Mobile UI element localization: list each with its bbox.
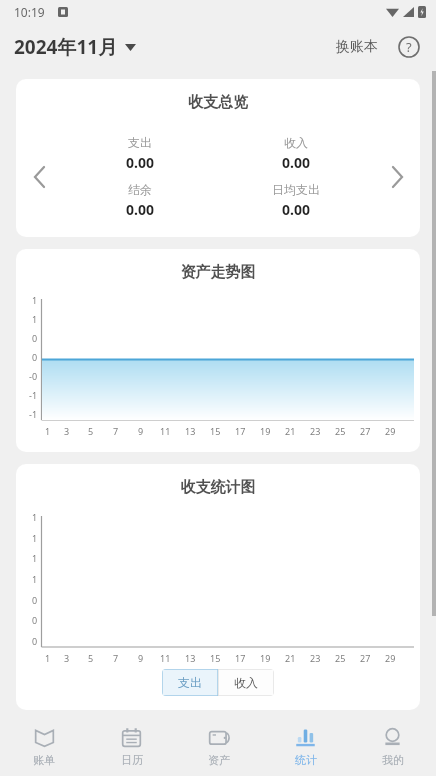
staticText: 统计 <box>295 753 317 767</box>
button[interactable]: 我的 <box>349 718 436 776</box>
staticText: 7 <box>113 425 119 437</box>
staticText: 我的 <box>382 753 404 767</box>
staticText: 2024年11月 <box>14 34 118 60</box>
staticText: 资产走势图 <box>16 263 420 282</box>
staticText: 17 <box>235 652 246 664</box>
staticText: 1 <box>32 511 38 523</box>
staticText: 收入 <box>234 675 258 690</box>
staticText: -0 <box>29 370 38 382</box>
staticText: 收支统计图 <box>16 478 420 497</box>
staticText: 25 <box>335 425 346 437</box>
staticText: 9 <box>138 425 144 437</box>
staticText: 10:19 <box>14 4 45 20</box>
staticText: 15 <box>210 425 221 437</box>
button[interactable]: 收入 <box>218 669 274 696</box>
button[interactable]: 账单 <box>0 718 88 776</box>
staticText: 29 <box>385 425 396 437</box>
staticText: 日历 <box>121 753 143 767</box>
staticText: 27 <box>360 652 371 664</box>
staticText: 0 <box>32 351 38 363</box>
staticText: -1 <box>29 389 38 401</box>
button[interactable]: 日历 <box>88 718 175 776</box>
staticText: 结余 <box>128 182 152 197</box>
staticText: 1 <box>32 552 38 564</box>
staticText: 11 <box>160 652 171 664</box>
button[interactable]: 2024年11月 <box>14 34 136 60</box>
button[interactable]: 支出 <box>162 669 218 696</box>
staticText: 0 <box>32 635 38 647</box>
staticText: 1 <box>45 425 51 437</box>
staticText: 5 <box>88 425 94 437</box>
staticText: 0 <box>32 332 38 344</box>
staticText: 11 <box>160 425 171 437</box>
staticText: 19 <box>260 652 271 664</box>
button[interactable]: 统计 <box>262 718 349 776</box>
staticText: 日均支出 <box>272 182 320 197</box>
staticText: 19 <box>260 425 271 437</box>
staticText: 15 <box>210 652 221 664</box>
staticText: 3 <box>64 652 70 664</box>
staticText: 0.00 <box>282 153 310 172</box>
staticText: 23 <box>310 425 321 437</box>
staticText: 0.00 <box>126 200 154 219</box>
button[interactable]: Next <box>374 126 420 227</box>
staticText: 27 <box>360 425 371 437</box>
button[interactable]: 资产 <box>175 718 262 776</box>
staticText: 7 <box>113 652 119 664</box>
staticText: 换账本 <box>336 38 378 56</box>
staticText: 1 <box>32 573 38 585</box>
staticText: 13 <box>185 652 196 664</box>
staticText: 支出 <box>178 675 202 690</box>
staticText: 1 <box>45 652 51 664</box>
staticText: 收支总览 <box>16 93 420 112</box>
button[interactable]: 换账本 <box>332 32 382 62</box>
staticText: 17 <box>235 425 246 437</box>
staticText: 21 <box>285 652 296 664</box>
button[interactable]: Help <box>396 34 422 60</box>
staticText: 9 <box>138 652 144 664</box>
button[interactable]: Previous <box>16 126 62 227</box>
staticText: 0 <box>32 614 38 626</box>
staticText: 0 <box>32 594 38 606</box>
staticText: 21 <box>285 425 296 437</box>
staticText: 账单 <box>33 753 55 767</box>
staticText: 1 <box>32 313 38 325</box>
staticText: 13 <box>185 425 196 437</box>
staticText: 5 <box>88 652 94 664</box>
staticText: 支出 <box>128 135 152 150</box>
staticText: 1 <box>32 294 38 306</box>
staticText: ? <box>406 38 412 56</box>
staticText: -1 <box>29 408 38 420</box>
staticText: 0.00 <box>282 200 310 219</box>
staticText: 0.00 <box>126 153 154 172</box>
staticText: 25 <box>335 652 346 664</box>
staticText: 1 <box>32 532 38 544</box>
staticText: 29 <box>385 652 396 664</box>
staticText: 资产 <box>208 753 230 767</box>
staticText: 收入 <box>284 135 308 150</box>
staticText: 23 <box>310 652 321 664</box>
staticText: 3 <box>64 425 70 437</box>
